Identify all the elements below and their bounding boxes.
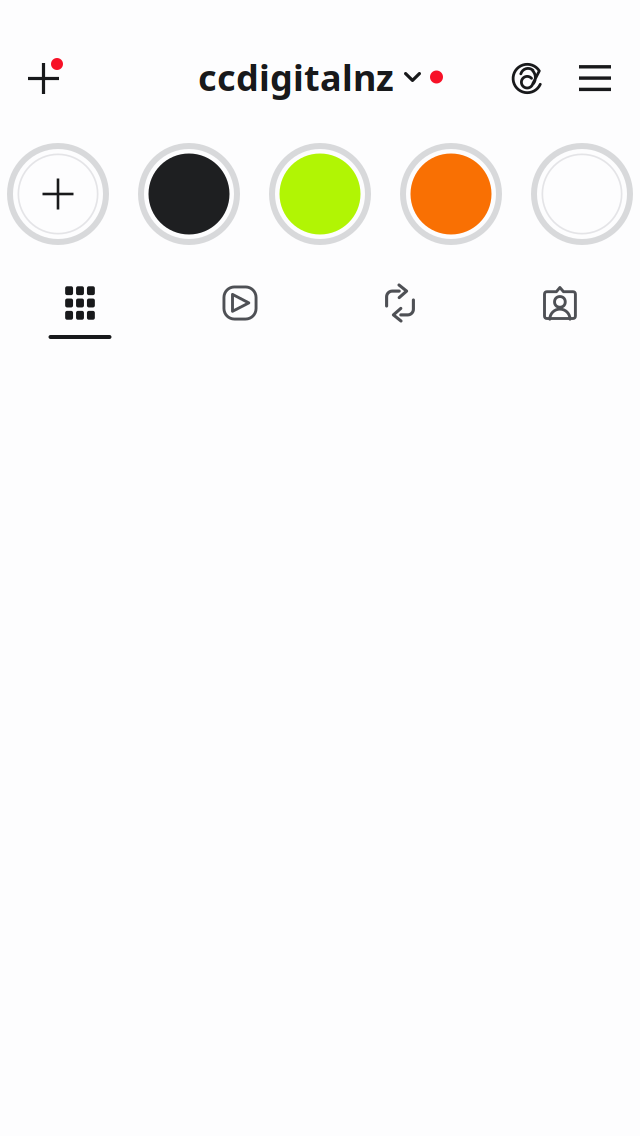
button[interactable]: Highlight (531, 143, 633, 245)
button[interactable]: Menu (568, 50, 622, 106)
staticText: ccdigitalnz (198, 53, 394, 101)
button[interactable]: Posts (0, 279, 160, 349)
button[interactable]: Add highlight (7, 143, 109, 245)
button[interactable]: Threads (504, 49, 554, 105)
button[interactable]: Tagged (480, 279, 640, 349)
button[interactable]: Highlight (400, 143, 502, 245)
button[interactable]: ccdigitalnz (198, 49, 443, 105)
button[interactable]: Reposts (320, 279, 480, 349)
button[interactable]: Highlight (269, 143, 371, 245)
button[interactable]: Reels (160, 279, 320, 349)
button[interactable]: New post (22, 49, 80, 105)
button[interactable]: Highlight (138, 143, 240, 245)
